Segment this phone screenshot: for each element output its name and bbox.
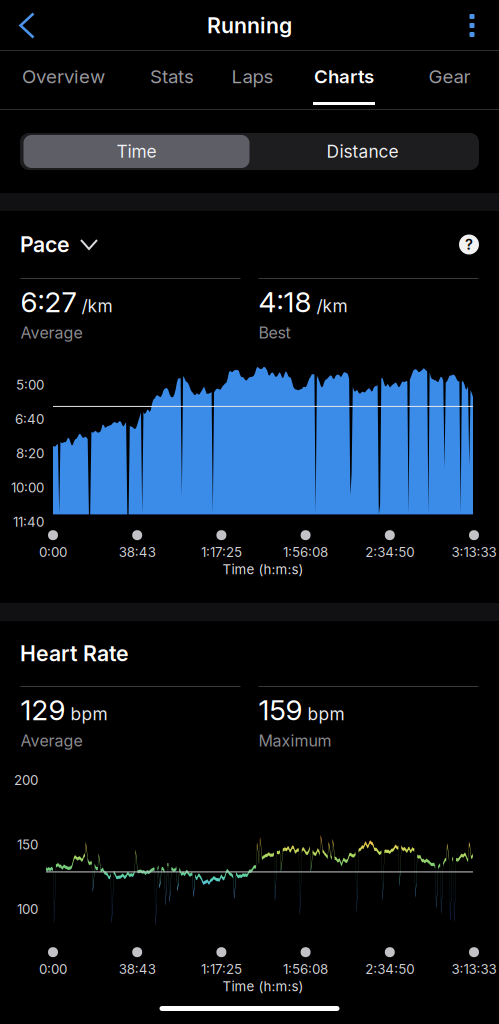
staticText: 159 [258, 693, 302, 727]
staticText: ? [465, 236, 473, 253]
staticText: 1:17:25 [201, 544, 242, 560]
staticText: 0:00 [39, 961, 67, 977]
button[interactable]: Back [0, 0, 54, 51]
button[interactable]: Help [459, 234, 479, 254]
staticText: Distance [326, 141, 398, 162]
staticText: Maximum [258, 731, 331, 750]
staticText: 1:17:25 [201, 961, 242, 977]
staticText: Heart Rate [20, 641, 129, 666]
staticText: 200 [14, 772, 38, 788]
staticText: Time [116, 141, 156, 162]
staticText: Average [20, 731, 82, 750]
staticText: 38:43 [119, 544, 156, 560]
button[interactable]: Pace [20, 232, 97, 257]
button[interactable]: Laps [217, 51, 288, 110]
staticText: Best [258, 323, 290, 342]
staticText: 5:00 [16, 377, 44, 393]
staticText: 6:27 [20, 285, 76, 319]
staticText: 150 [17, 837, 38, 853]
staticText: Average [20, 323, 82, 342]
staticText: 100 [17, 901, 38, 917]
staticText: /km [81, 295, 112, 316]
staticText: 2:34:50 [365, 961, 414, 977]
staticText: 3:13:33 [451, 544, 496, 560]
staticText: Charts [314, 65, 374, 88]
staticText: Time (h:m:s) [222, 978, 303, 994]
button[interactable]: Charts [288, 51, 400, 110]
staticText: 0:00 [39, 544, 67, 560]
button[interactable]: Time [23, 135, 249, 168]
staticText: 1:56:08 [283, 961, 328, 977]
staticText: 129 [20, 693, 65, 727]
staticText: Overview [22, 65, 105, 88]
staticText: 8:20 [16, 445, 44, 461]
staticText: Time (h:m:s) [222, 561, 303, 577]
staticText: 2:34:50 [365, 544, 414, 560]
staticText: bpm [70, 703, 107, 724]
staticText: Pace [20, 232, 70, 257]
button[interactable]: Gear [400, 51, 499, 110]
button[interactable]: Distance [249, 135, 475, 168]
staticText: Gear [428, 65, 470, 88]
staticText: 3:13:33 [451, 961, 496, 977]
staticText: Laps [231, 65, 273, 88]
staticText: 1:56:08 [283, 544, 328, 560]
staticText: Running [207, 13, 292, 38]
button[interactable]: Overview [0, 51, 127, 110]
staticText: 6:40 [15, 411, 44, 427]
staticText: 38:43 [119, 961, 156, 977]
button[interactable]: More options [445, 0, 499, 51]
staticText: 11:40 [13, 514, 44, 530]
button[interactable]: Stats [127, 51, 217, 110]
staticText: 10:00 [11, 480, 44, 496]
staticText: Stats [150, 65, 194, 88]
staticText: bpm [307, 703, 344, 724]
staticText: 4:18 [258, 285, 311, 319]
staticText: /km [316, 295, 347, 316]
